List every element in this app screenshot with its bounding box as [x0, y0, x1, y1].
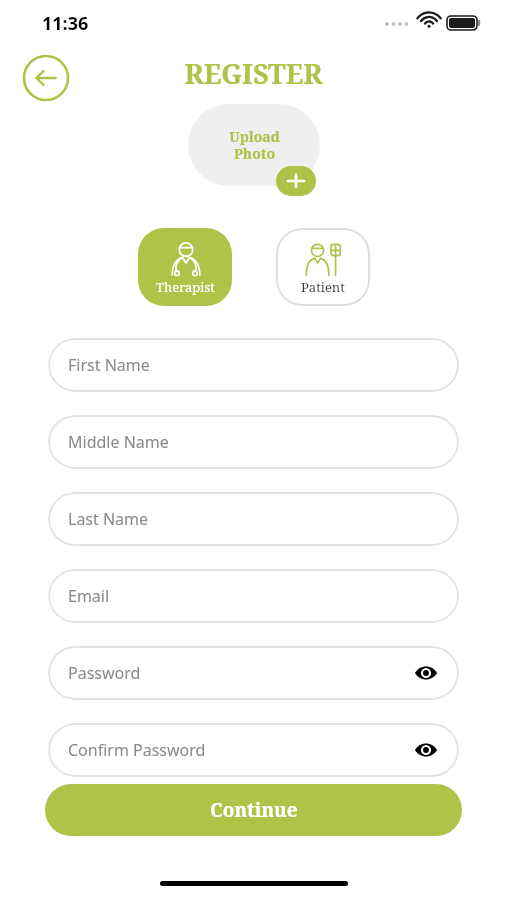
- button[interactable]: Middle Name: [48, 415, 459, 469]
- staticText: Therapist: [156, 278, 215, 296]
- button[interactable]: Back: [22, 54, 70, 102]
- staticText: Password: [68, 662, 141, 684]
- button[interactable]: Password: [48, 646, 459, 700]
- staticText: Continue: [210, 797, 298, 823]
- staticText: Email: [68, 585, 110, 607]
- button[interactable]: Last Name: [48, 492, 459, 546]
- staticText: Patient: [301, 278, 345, 296]
- staticText: 11:36: [42, 11, 89, 36]
- button[interactable]: Confirm Password: [48, 723, 459, 777]
- staticText: REGISTER: [184, 55, 323, 92]
- staticText: First Name: [68, 354, 150, 376]
- staticText: Middle Name: [68, 431, 169, 453]
- button[interactable]: Therapist: [138, 228, 232, 306]
- staticText: Confirm Password: [68, 739, 206, 761]
- button[interactable]: Patient: [276, 228, 370, 306]
- button[interactable]: First Name: [48, 338, 459, 392]
- button[interactable]: Continue: [45, 784, 462, 836]
- staticText: Last Name: [68, 508, 149, 530]
- button[interactable]: Upload Photo: [188, 104, 320, 186]
- staticText: Upload Photo: [229, 127, 280, 163]
- button[interactable]: Add photo: [276, 166, 316, 196]
- button[interactable]: Show password: [411, 658, 441, 688]
- button[interactable]: Show password: [411, 735, 441, 765]
- button[interactable]: Email: [48, 569, 459, 623]
